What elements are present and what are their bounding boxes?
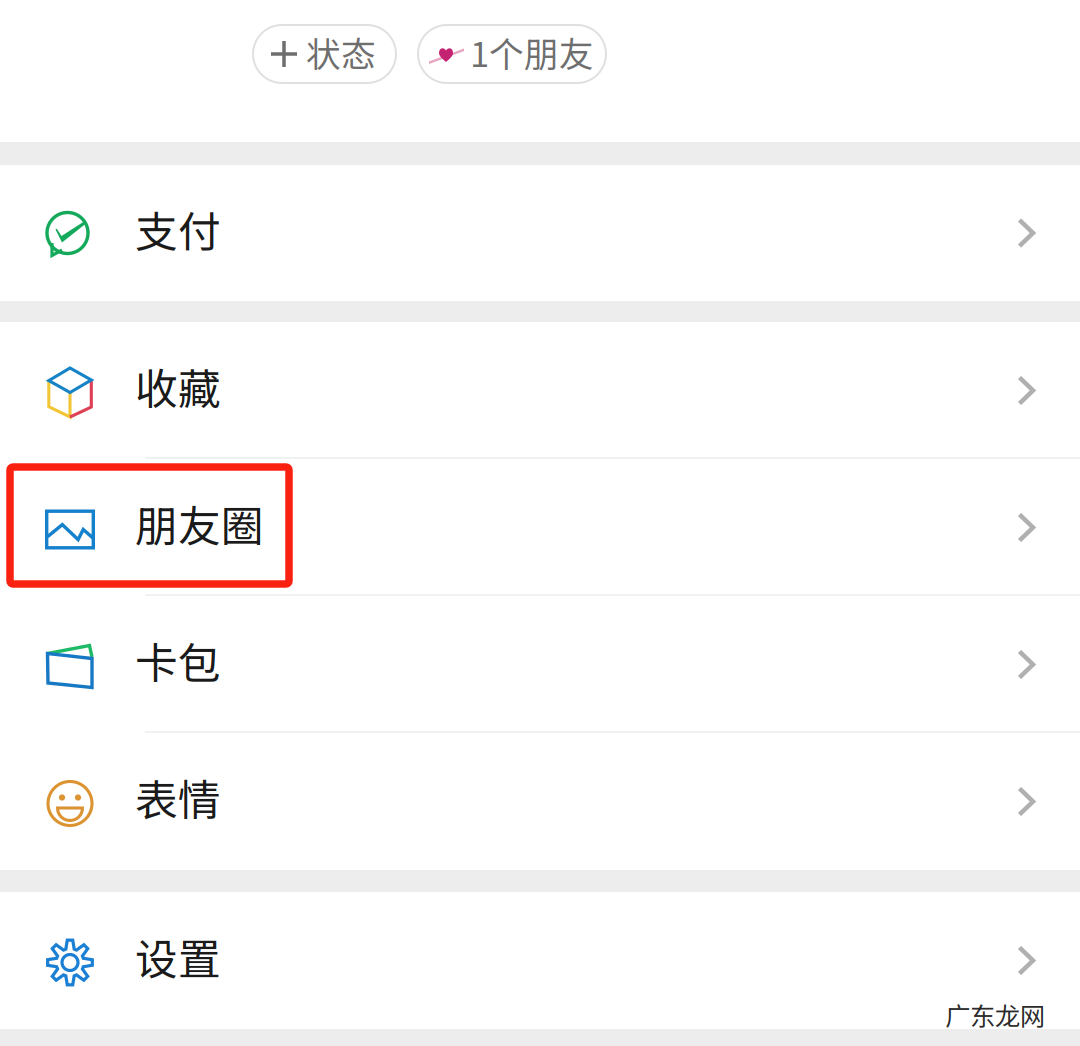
staticText: 收藏: [135, 356, 221, 417]
button[interactable]: 1个朋友: [418, 25, 606, 83]
staticText: 广东龙网: [945, 996, 1045, 1033]
staticText: 状态: [306, 27, 376, 77]
button[interactable]: 表情: [0, 733, 1080, 870]
button[interactable]: 收藏: [0, 322, 1080, 459]
button[interactable]: 卡包: [0, 596, 1080, 733]
button[interactable]: 朋友圈: [0, 459, 1080, 596]
staticText: 1个朋友: [470, 27, 594, 77]
staticText: 卡包: [135, 630, 221, 691]
staticText: 朋友圈: [135, 493, 264, 554]
staticText: 设置: [135, 926, 221, 987]
staticText: 支付: [135, 198, 221, 260]
button[interactable]: 支付: [0, 165, 1080, 301]
button[interactable]: 设置: [0, 892, 1080, 1029]
staticText: 表情: [135, 767, 221, 828]
button[interactable]: 状态: [253, 25, 396, 83]
